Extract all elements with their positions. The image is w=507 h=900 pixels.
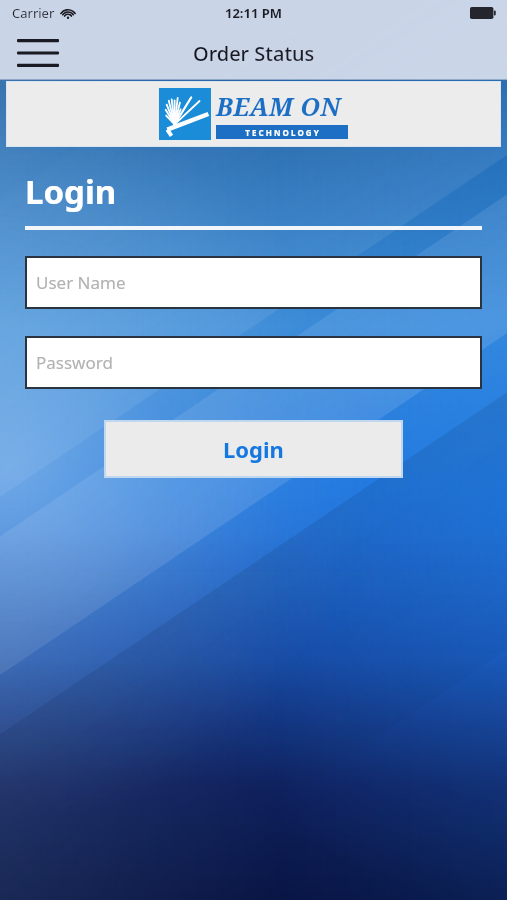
button[interactable]: Login <box>106 422 401 476</box>
button[interactable]: User Name <box>27 258 480 307</box>
staticText: Carrier <box>12 4 55 22</box>
staticText: T E C H N O L O G Y <box>245 127 319 138</box>
staticText: User Name <box>36 271 126 294</box>
staticText: Password <box>36 351 113 374</box>
staticText: BEAM ON <box>216 89 341 123</box>
staticText: Login <box>25 169 117 214</box>
button[interactable]: Password <box>27 338 480 387</box>
staticText: Order Status <box>193 40 315 67</box>
button[interactable]: Menu <box>14 33 62 73</box>
other: Battery full <box>470 7 496 19</box>
staticText: 12:11 PM <box>225 4 283 22</box>
staticText: Login <box>223 434 284 464</box>
